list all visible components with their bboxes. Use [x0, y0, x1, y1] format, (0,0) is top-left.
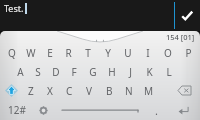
button[interactable]: J: [121, 62, 140, 81]
button[interactable]: 12#: [2, 100, 31, 120]
button[interactable]: H: [102, 62, 121, 81]
button[interactable]: C: [59, 81, 79, 100]
button[interactable]: Test.: [4, 2, 27, 14]
staticText: V: [86, 84, 92, 98]
staticText: 12#: [8, 103, 26, 117]
button[interactable]: X: [40, 81, 59, 100]
button[interactable]: I: [138, 43, 158, 62]
staticText: .: [155, 103, 158, 118]
button[interactable]: V: [79, 81, 99, 100]
button[interactable]: E: [40, 43, 59, 62]
staticText: S: [35, 65, 41, 79]
button[interactable]: K: [140, 62, 159, 81]
button[interactable]: A: [11, 62, 29, 81]
button[interactable]: Enter: [169, 100, 198, 120]
button[interactable]: B: [99, 81, 119, 100]
staticText: L: [166, 65, 172, 79]
staticText: I: [146, 46, 150, 60]
staticText: C: [66, 84, 73, 98]
staticText: G: [89, 65, 97, 79]
staticText: Z: [28, 84, 34, 98]
button[interactable]: U: [118, 43, 138, 62]
staticText: A: [17, 65, 24, 79]
button[interactable]: Keyboard settings: [31, 100, 56, 120]
button[interactable]: Y: [98, 43, 118, 62]
button[interactable]: D: [47, 62, 65, 81]
staticText: X: [47, 84, 53, 98]
button[interactable]: Q: [2, 43, 21, 62]
staticText: K: [146, 65, 153, 79]
staticText: M: [144, 84, 154, 98]
staticText: J: [129, 65, 132, 79]
staticText: T: [85, 46, 91, 60]
button[interactable]: Shift: [2, 81, 21, 100]
button[interactable]: Send message: [174, 0, 200, 31]
staticText: R: [65, 46, 72, 60]
button[interactable]: Backspace: [171, 81, 198, 100]
button[interactable]: P: [178, 43, 198, 62]
staticText: H: [108, 65, 116, 79]
button[interactable]: W: [21, 43, 40, 62]
staticText: N: [125, 84, 133, 98]
button[interactable]: N: [119, 81, 139, 100]
staticText: P: [185, 46, 192, 60]
staticText: F: [71, 65, 77, 79]
button[interactable]: T: [78, 43, 98, 62]
button[interactable]: G: [83, 62, 102, 81]
staticText: 154 [01]: [166, 32, 195, 42]
button[interactable]: L: [159, 62, 178, 81]
staticText: O: [164, 46, 172, 60]
button[interactable]: S: [29, 62, 47, 81]
button[interactable]: O: [158, 43, 178, 62]
button[interactable]: Z: [21, 81, 40, 100]
staticText: Q: [8, 46, 16, 60]
button[interactable]: Space: [56, 100, 144, 120]
staticText: B: [106, 84, 113, 98]
staticText: W: [26, 46, 36, 60]
staticText: Test.: [4, 2, 24, 14]
button[interactable]: R: [59, 43, 78, 62]
button[interactable]: .: [144, 100, 169, 120]
button[interactable]: M: [139, 81, 159, 100]
staticText: U: [124, 46, 132, 60]
staticText: D: [52, 65, 60, 79]
staticText: E: [47, 46, 53, 60]
staticText: Y: [105, 46, 111, 60]
button[interactable]: F: [65, 62, 83, 81]
button[interactable]: Hide keyboard: [57, 31, 143, 42]
